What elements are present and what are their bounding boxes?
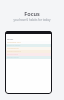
button[interactable]: Stretching [5,53,52,56]
button[interactable]: Write journal [5,50,52,53]
staticText: Morning run [7,41,21,44]
staticText: Meditation [7,47,19,50]
staticText: Sleep early [7,56,19,59]
staticText: Stretching [7,53,19,56]
staticText: Read a book [7,44,21,47]
button[interactable]: Read a book [5,44,52,47]
staticText: you have 6 habits for today [0,18,64,22]
button[interactable]: Sleep early [5,56,52,59]
staticText: Focus [0,10,64,17]
staticText: today [7,37,14,40]
staticText: Write journal [7,50,22,53]
button[interactable]: Morning run [5,41,52,44]
button[interactable]: Meditation [5,47,52,50]
